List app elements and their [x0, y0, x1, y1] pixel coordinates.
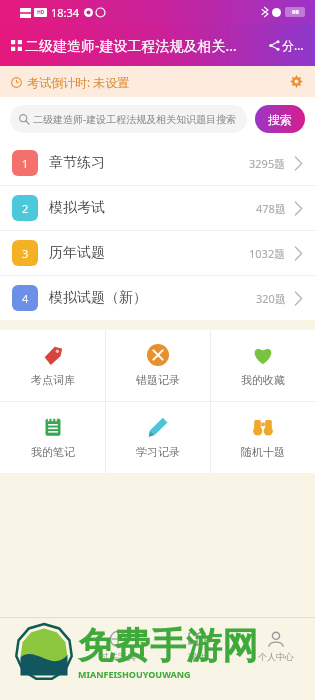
staticText: 考点词库 — [31, 373, 75, 387]
staticText: 过关宝典 — [100, 651, 136, 662]
staticText: 3295题 — [249, 156, 286, 171]
staticText: 二级建造师-建设工程法规及相关知识题目搜索 — [33, 112, 237, 126]
button[interactable]: 分… — [266, 33, 307, 57]
button[interactable]: 考点词库 — [0, 330, 105, 401]
staticText: 1032题 — [249, 246, 286, 261]
button[interactable]: 设置 — [286, 71, 307, 92]
button[interactable]: 课件 — [157, 625, 236, 666]
staticText: 模拟考试 — [49, 199, 105, 217]
staticText: HD — [37, 9, 45, 16]
button[interactable]: 我的收藏 — [211, 330, 315, 401]
button[interactable]: 随机十题 — [211, 402, 315, 473]
button[interactable]: 3 — [0, 231, 315, 275]
button[interactable]: 考试倒计时: 未设置 — [0, 66, 315, 97]
staticText: 章节练习 — [49, 154, 105, 172]
staticText: 二级建造师-建设工程法规及相关… — [25, 36, 237, 55]
staticText: 学习记录 — [136, 445, 180, 459]
button[interactable]: 学习记录 — [106, 402, 210, 473]
staticText: 我的笔记 — [31, 445, 75, 459]
staticText: 98 — [292, 8, 299, 16]
staticText: 历年试题 — [49, 244, 105, 262]
staticText: 478题 — [256, 201, 286, 216]
staticText: 首页 — [30, 651, 48, 662]
button[interactable]: 首页 — [0, 625, 78, 666]
staticText: 320题 — [256, 291, 286, 306]
button[interactable]: 4 — [0, 276, 315, 320]
button[interactable]: 过关宝典 — [78, 625, 157, 666]
staticText: 2 — [22, 201, 29, 216]
staticText: 个人中心 — [258, 651, 294, 662]
staticText: 错题记录 — [136, 373, 180, 387]
button[interactable]: 搜索 — [255, 105, 305, 133]
button[interactable]: 个人中心 — [236, 625, 315, 666]
button[interactable]: 2 — [0, 186, 315, 230]
button[interactable]: 我的笔记 — [0, 402, 105, 473]
button[interactable]: 错题记录 — [106, 330, 210, 401]
staticText: MIANFEISHOUYOUWANG — [78, 668, 191, 680]
staticText: 4 — [22, 291, 29, 306]
staticText: 课件 — [188, 651, 206, 662]
staticText: 18:34 — [51, 5, 80, 20]
staticText: 3 — [22, 246, 29, 261]
staticText: 考试倒计时: 未设置 — [27, 74, 130, 90]
staticText: 1 — [22, 156, 29, 171]
staticText: 搜索 — [268, 112, 292, 127]
staticText: 模拟试题（新） — [49, 289, 147, 307]
staticText: 分… — [282, 37, 304, 53]
button[interactable]: 1 — [0, 141, 315, 185]
button[interactable]: 二级建造师-建设工程法规及相关知识题目搜索 — [10, 105, 247, 133]
staticText: 随机十题 — [241, 445, 285, 459]
staticText: 免费手游网 — [78, 623, 258, 668]
staticText: 我的收藏 — [241, 373, 285, 387]
